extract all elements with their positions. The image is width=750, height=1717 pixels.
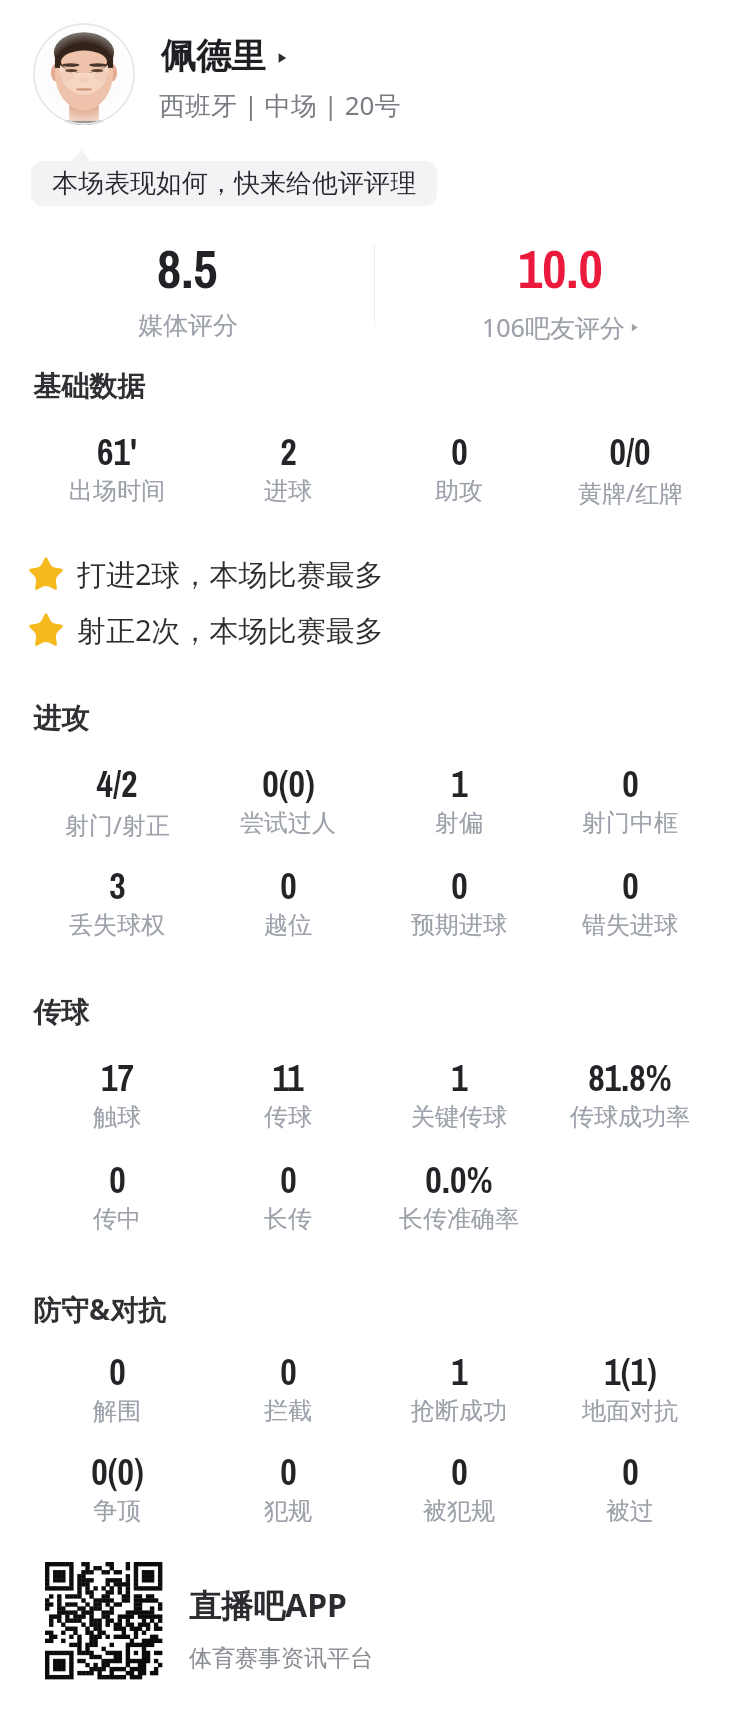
button[interactable]: 0: [203, 1156, 373, 1234]
button[interactable]: 0: [32, 1348, 202, 1426]
button[interactable]: 1(1): [545, 1348, 715, 1426]
staticText: 本场表现如何，快来给他评评理: [52, 167, 416, 200]
staticText: 体育赛事资讯平台: [189, 1644, 373, 1673]
button[interactable]: 射正2次，本场比赛最多: [26, 610, 384, 650]
staticText: 争顶: [93, 1496, 141, 1526]
button[interactable]: 0(0): [203, 760, 373, 838]
staticText: 2: [280, 428, 297, 476]
button[interactable]: 0: [203, 1348, 373, 1426]
button[interactable]: 3: [32, 862, 202, 940]
button[interactable]: 本场表现如何，快来给他评评理: [31, 161, 437, 206]
staticText: 3: [109, 862, 126, 910]
staticText: 0: [109, 1348, 126, 1396]
staticText: 传中: [93, 1204, 141, 1234]
button[interactable]: 4/2: [32, 760, 202, 841]
button[interactable]: 8.5: [10, 233, 365, 341]
staticText: 0: [451, 1448, 468, 1496]
button[interactable]: 0: [545, 862, 715, 940]
staticText: 10.0: [518, 233, 603, 304]
button[interactable]: 0/0: [545, 428, 715, 509]
staticText: 传球: [33, 995, 89, 1030]
button[interactable]: 佩德里: [161, 34, 289, 78]
button[interactable]: 11: [203, 1054, 373, 1132]
staticText: 射门中框: [582, 808, 678, 838]
staticText: 关键传球: [411, 1102, 507, 1132]
staticText: 8.5: [157, 233, 218, 304]
staticText: 1: [451, 1348, 468, 1396]
staticText: 0: [451, 428, 468, 476]
staticText: 0(0): [91, 1448, 144, 1496]
staticText: 长传: [264, 1204, 312, 1234]
staticText: 抢断成功: [411, 1396, 507, 1426]
staticText: 0: [622, 1448, 639, 1496]
staticText: 直播吧APP: [189, 1583, 347, 1627]
button[interactable]: 0: [374, 428, 544, 506]
button[interactable]: 1: [374, 760, 544, 838]
button[interactable]: Player avatar: [33, 23, 135, 125]
staticText: 佩德里: [161, 34, 266, 78]
staticText: 106吧友评分: [482, 310, 625, 344]
staticText: 防守&对抗: [33, 1290, 167, 1328]
button[interactable]: 61': [32, 428, 202, 506]
staticText: 预期进球: [411, 910, 507, 940]
staticText: 传球成功率: [570, 1102, 690, 1132]
staticText: 媒体评分: [138, 310, 238, 341]
button[interactable]: 直播吧APP: [45, 1562, 373, 1679]
staticText: 犯规: [264, 1496, 312, 1526]
staticText: 长传准确率: [399, 1204, 519, 1234]
button[interactable]: 81.8%: [545, 1054, 715, 1132]
staticText: 17: [101, 1054, 134, 1102]
staticText: 射正2次，本场比赛最多: [77, 610, 384, 650]
staticText: 越位: [264, 910, 312, 940]
staticText: 射偏: [435, 808, 483, 838]
staticText: 0: [280, 1448, 297, 1496]
staticText: 传球: [264, 1102, 312, 1132]
staticText: 61': [97, 428, 137, 476]
staticText: 0: [280, 1348, 297, 1396]
button[interactable]: 17: [32, 1054, 202, 1132]
staticText: 助攻: [435, 476, 483, 506]
button[interactable]: 10.0: [383, 233, 738, 344]
staticText: 丢失球权: [69, 910, 165, 940]
staticText: 81.8%: [588, 1054, 672, 1102]
staticText: 被犯规: [423, 1496, 495, 1526]
staticText: 0: [622, 760, 639, 808]
staticText: 错失进球: [582, 910, 678, 940]
button[interactable]: 1: [374, 1348, 544, 1426]
staticText: 4/2: [96, 760, 138, 808]
staticText: 11: [272, 1054, 304, 1102]
staticText: 0/0: [609, 428, 651, 476]
button[interactable]: 0: [374, 862, 544, 940]
staticText: 进攻: [33, 701, 89, 736]
staticText: 0: [451, 862, 468, 910]
staticText: 0: [280, 1156, 297, 1204]
button[interactable]: 0: [203, 862, 373, 940]
staticText: 1: [451, 760, 468, 808]
staticText: 黄牌/红牌: [578, 476, 683, 509]
button[interactable]: 0.0%: [374, 1156, 544, 1234]
button[interactable]: 0: [32, 1156, 202, 1234]
staticText: 射门/射正: [65, 808, 170, 841]
staticText: 打进2球，本场比赛最多: [77, 554, 384, 594]
button[interactable]: 0: [203, 1448, 373, 1526]
staticText: 1: [451, 1054, 468, 1102]
staticText: 被过: [606, 1496, 654, 1526]
staticText: 0: [280, 862, 297, 910]
button[interactable]: 0: [545, 760, 715, 838]
staticText: 1(1): [604, 1348, 657, 1396]
staticText: 0(0): [262, 760, 315, 808]
staticText: 拦截: [264, 1396, 312, 1426]
staticText: 地面对抗: [582, 1396, 678, 1426]
button[interactable]: 2: [203, 428, 373, 506]
button[interactable]: 0(0): [32, 1448, 202, 1526]
staticText: 0.0%: [425, 1156, 493, 1204]
button[interactable]: 打进2球，本场比赛最多: [26, 554, 384, 594]
staticText: 西班牙 | 中场 | 20号: [159, 87, 401, 123]
staticText: 尝试过人: [240, 808, 336, 838]
staticText: 出场时间: [69, 476, 165, 506]
button[interactable]: 0: [374, 1448, 544, 1526]
button[interactable]: 0: [545, 1448, 715, 1526]
staticText: 0: [109, 1156, 126, 1204]
staticText: 进球: [264, 476, 312, 506]
button[interactable]: 1: [374, 1054, 544, 1132]
